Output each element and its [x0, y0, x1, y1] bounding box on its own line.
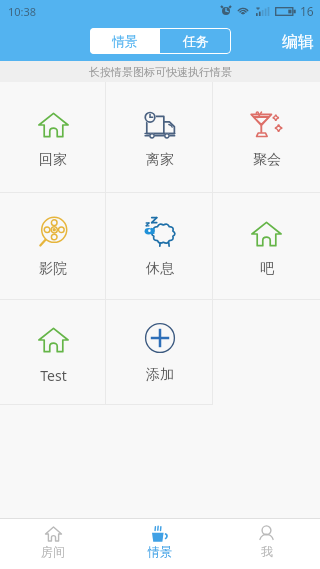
button[interactable]: 情景 — [106, 519, 213, 569]
staticText: 编辑 — [282, 32, 314, 52]
button[interactable]: 任务 — [160, 28, 231, 54]
button[interactable]: 添加 — [106, 300, 213, 404]
staticText: 情景 — [112, 33, 138, 49]
button[interactable]: Test — [0, 300, 106, 404]
button[interactable]: 房间 — [0, 519, 106, 569]
staticText: 吧 — [260, 260, 274, 278]
staticText: 房间 — [41, 544, 65, 559]
staticText: 休息 — [146, 260, 174, 278]
staticText: 影院 — [39, 260, 67, 278]
button[interactable]: 聚会 — [213, 82, 320, 192]
button[interactable]: 影院 — [0, 193, 106, 299]
staticText: 长按情景图标可快速执行情景 — [89, 65, 232, 79]
button[interactable]: 回家 — [0, 82, 106, 192]
staticText: 16 — [300, 3, 314, 19]
staticText: 聚会 — [253, 151, 281, 169]
button[interactable]: 我 — [213, 519, 320, 569]
staticText: 回家 — [39, 151, 67, 169]
staticText: 情景 — [148, 544, 172, 559]
staticText: 离家 — [146, 151, 174, 169]
staticText: 10:38 — [8, 4, 37, 19]
button[interactable]: 编辑 — [270, 22, 320, 61]
button[interactable]: 离家 — [106, 82, 213, 192]
staticText: 任务 — [183, 33, 209, 49]
staticText: 我 — [261, 544, 273, 559]
staticText: Test — [40, 366, 67, 385]
button[interactable]: 吧 — [213, 193, 320, 299]
staticText: 添加 — [146, 366, 174, 384]
button[interactable]: 休息 — [106, 193, 213, 299]
button[interactable]: 情景 — [90, 28, 160, 54]
